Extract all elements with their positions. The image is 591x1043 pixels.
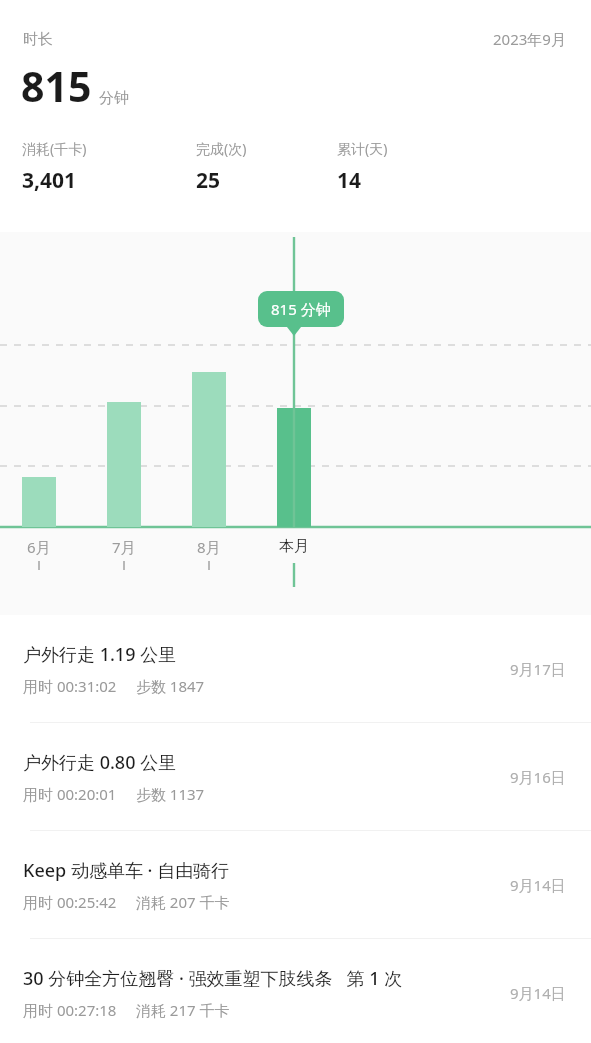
staticText: 8月 [197,537,221,557]
staticText: 815 [21,58,92,114]
button[interactable]: 户外行走 1.19 公里 [0,615,591,722]
staticText: 815 分钟 [271,299,331,319]
staticText: 时长 [23,30,53,49]
staticText: 9月17日 [510,659,566,679]
staticText: 6月 [27,537,51,557]
staticText: 消耗(千卡) [22,139,87,158]
staticText: Keep 动感单车 · 自由骑行 [23,858,230,883]
button[interactable]: 户外行走 0.80 公里 [0,723,591,830]
staticText: 9月16日 [510,767,566,787]
staticText: 户外行走 1.19 公里 [23,642,177,667]
staticText: 25 [196,166,221,195]
staticText: 用时 00:27:18 消耗 217 千卡 [23,1000,230,1020]
staticText: 9月14日 [510,875,566,895]
staticText: 累计(天) [337,139,388,158]
staticText: 用时 00:25:42 消耗 207 千卡 [23,892,230,912]
staticText: 30 分钟全方位翘臀 · 强效重塑下肢线条 第 1 次 [23,966,403,991]
staticText: 9月14日 [510,983,566,1003]
staticText: 户外行走 0.80 公里 [23,750,177,775]
button[interactable]: 815 分钟 [258,291,344,327]
staticText: 14 [337,166,362,195]
staticText: 分钟 [99,89,129,108]
staticText: 2023年9月 [493,29,566,49]
button[interactable]: Keep 动感单车 · 自由骑行 [0,831,591,938]
staticText: 本月 [279,537,309,556]
staticText: 完成(次) [196,139,247,158]
staticText: 7月 [112,537,136,557]
button[interactable]: 30 分钟全方位翘臀 · 强效重塑下肢线条 第 1 次 [0,939,591,1043]
staticText: 用时 00:31:02 步数 1847 [23,676,205,696]
staticText: 3,401 [22,166,77,195]
staticText: 用时 00:20:01 步数 1137 [23,784,205,804]
